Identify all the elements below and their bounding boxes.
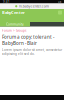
staticText: 9:41 — [3, 0, 10, 3]
staticText: LTE — [58, 0, 61, 3]
staticText: Lorem ipsum dolor sit amet, consectetur … — [2, 48, 62, 56]
staticText: Forum > Groups — [2, 28, 26, 32]
staticText: Forum a copy: tolerant - BabyBorn - Blai… — [2, 34, 54, 46]
staticText: Community — [6, 22, 24, 26]
staticText: m.babycenter.com — [19, 4, 49, 9]
staticText: BabyCenter — [2, 10, 25, 15]
